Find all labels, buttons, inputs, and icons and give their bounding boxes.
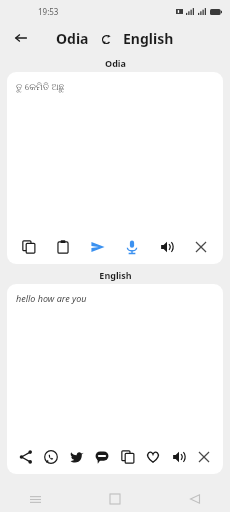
staticText: Odia (105, 57, 126, 69)
staticText: ତୁ କେମିତି ଅଛୁ (16, 80, 65, 92)
button[interactable]: Speak (155, 235, 179, 259)
button[interactable]: Clear (192, 445, 216, 469)
button[interactable]: Home (102, 486, 128, 512)
button[interactable]: Favourite (141, 445, 165, 469)
staticText: English (99, 269, 132, 281)
button[interactable]: SMS (90, 445, 114, 469)
button[interactable]: Swap languages (97, 30, 115, 48)
button[interactable]: Odia (54, 29, 91, 48)
button[interactable]: Voice input (120, 235, 144, 259)
button[interactable]: Copy (17, 235, 41, 259)
button[interactable]: hello how are you (7, 284, 223, 440)
staticText: English (123, 29, 174, 48)
button[interactable]: Translate (86, 235, 110, 259)
button[interactable]: Copy (116, 445, 140, 469)
button[interactable]: ତୁ କେମିତି ଅଛୁ (7, 72, 223, 230)
button[interactable]: WhatsApp (39, 445, 63, 469)
staticText: Odia (56, 29, 89, 48)
button[interactable]: English (121, 29, 176, 48)
button[interactable]: Speak (167, 445, 191, 469)
staticText: 19:53 (38, 6, 59, 17)
staticText: hello how are you (16, 292, 87, 304)
button[interactable]: Back (6, 23, 36, 53)
button[interactable]: Back (182, 486, 208, 512)
button[interactable]: Clear (189, 235, 213, 259)
button[interactable]: Paste (51, 235, 75, 259)
button[interactable]: Recents (22, 486, 48, 512)
button[interactable]: Twitter (65, 445, 89, 469)
button[interactable]: Share (14, 445, 38, 469)
